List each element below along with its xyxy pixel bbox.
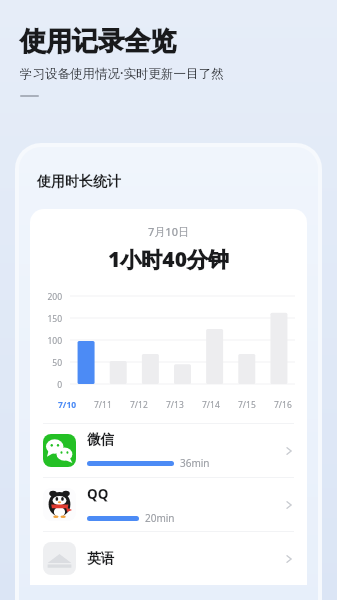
staticText: 0 [32,379,62,391]
staticText: 7/15 [238,399,256,411]
staticText: 使用记录全览 [20,25,176,58]
staticText: 1小时40分钟 [30,245,307,274]
staticText: 7/12 [130,399,148,411]
staticText: 7/14 [202,399,220,411]
staticText: 100 [32,335,62,347]
staticText: 150 [32,313,62,325]
staticText: QQ [87,485,109,503]
button[interactable]: 英语 [30,532,307,585]
other: 查看 英语 详情 [282,552,296,566]
staticText: 20min [145,511,175,525]
other: 查看 QQ 详情 [282,498,296,512]
staticText: 使用时长统计 [37,173,121,191]
staticText: 7/10 [58,399,77,411]
staticText: 7/11 [94,399,112,411]
staticText: 200 [32,291,62,303]
staticText: 英语 [87,550,114,567]
staticText: 7/16 [274,399,292,411]
staticText: 微信 [87,431,114,448]
button[interactable]: QQ [30,478,307,531]
staticText: 学习设备使用情况·实时更新一目了然 [20,65,224,82]
staticText: 36min [180,456,210,470]
other: 查看 微信 详情 [282,444,296,458]
staticText: 50 [32,357,62,369]
staticText: 7月10日 [30,224,307,239]
staticText: 7/13 [166,399,184,411]
button[interactable]: 微信 [30,424,307,477]
